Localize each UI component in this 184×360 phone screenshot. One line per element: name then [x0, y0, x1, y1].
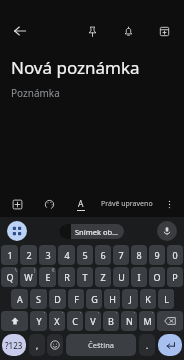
- staticText: E: [45, 271, 51, 283]
- button[interactable]: Z: [95, 267, 111, 287]
- staticText: 4: [64, 249, 70, 261]
- button[interactable]: M: [139, 311, 155, 331]
- button[interactable]: E: [39, 267, 56, 287]
- button[interactable]: Palette: [39, 194, 59, 214]
- staticText: H: [109, 293, 116, 305]
- button[interactable]: Shift: [1, 311, 28, 331]
- button[interactable]: ?123: [2, 334, 26, 356]
- staticText: S: [36, 293, 41, 305]
- button[interactable]: K: [140, 289, 156, 309]
- button[interactable]: Add: [7, 194, 27, 214]
- staticText: ': [152, 311, 154, 317]
- staticText: X: [54, 315, 60, 327]
- button[interactable]: W: [20, 267, 37, 287]
- staticText: L: [164, 293, 169, 305]
- button[interactable]: 1: [1, 245, 18, 265]
- button[interactable]: Emoji: [47, 334, 63, 356]
- button[interactable]: 8: [131, 245, 147, 265]
- staticText: B: [108, 315, 114, 327]
- button[interactable]: A: [11, 289, 28, 309]
- button[interactable]: Format text: [71, 194, 91, 214]
- button[interactable]: 5: [77, 245, 93, 265]
- button[interactable]: 0: [167, 245, 183, 265]
- button[interactable]: .: [139, 334, 155, 356]
- staticText: A: [17, 293, 23, 305]
- button[interactable]: More options: [159, 194, 179, 214]
- staticText: \: [15, 267, 17, 273]
- staticText: ˙: [136, 289, 137, 295]
- staticText: Z: [100, 271, 106, 283]
- staticText: 6: [100, 249, 106, 261]
- staticText: D: [54, 293, 61, 305]
- staticText: ': [98, 311, 100, 317]
- button[interactable]: G: [86, 289, 102, 309]
- button[interactable]: I: [131, 267, 147, 287]
- staticText: N: [126, 315, 133, 327]
- button[interactable]: F: [68, 289, 84, 309]
- button[interactable]: 7: [113, 245, 129, 265]
- staticText: O: [153, 271, 161, 283]
- button[interactable]: Keyboard menu: [7, 221, 27, 241]
- staticText: 0: [172, 249, 178, 261]
- staticText: ': [116, 311, 118, 317]
- button[interactable]: T: [77, 267, 93, 287]
- staticText: C: [72, 315, 78, 327]
- staticText: Poznámka: [11, 86, 60, 100]
- staticText: ?123: [5, 340, 23, 351]
- staticText: 8: [136, 249, 142, 261]
- button[interactable]: L: [158, 289, 174, 309]
- staticText: ˙: [154, 289, 155, 295]
- staticText: ˙: [64, 289, 65, 295]
- button[interactable]: ,: [29, 334, 45, 356]
- button[interactable]: Back: [6, 17, 34, 45]
- button[interactable]: 2: [20, 245, 37, 265]
- button[interactable]: R: [58, 267, 75, 287]
- button[interactable]: Reminder: [114, 17, 142, 45]
- button[interactable]: Voice input: [157, 221, 177, 241]
- staticText: ˙: [45, 289, 46, 295]
- staticText: ˙: [26, 289, 27, 295]
- staticText: Nová poznámka: [11, 56, 140, 79]
- button[interactable]: 6: [95, 245, 111, 265]
- button[interactable]: Q: [1, 267, 18, 287]
- staticText: ˙: [82, 289, 83, 295]
- button[interactable]: Archive: [150, 17, 178, 45]
- button[interactable]: D: [49, 289, 66, 309]
- button[interactable]: Enter: [158, 334, 182, 356]
- staticText: ': [134, 311, 136, 317]
- button[interactable]: Čeština: [66, 334, 136, 356]
- staticText: T: [82, 271, 88, 283]
- button[interactable]: S: [30, 289, 47, 309]
- button[interactable]: Snímek ob…: [59, 224, 124, 239]
- button[interactable]: U: [113, 267, 129, 287]
- button[interactable]: C: [67, 311, 83, 331]
- staticText: Snímek ob…: [75, 227, 118, 237]
- button[interactable]: N: [121, 311, 137, 331]
- button[interactable]: V: [85, 311, 101, 331]
- staticText: 5: [82, 249, 88, 261]
- staticText: V: [90, 315, 96, 327]
- staticText: A: [78, 198, 84, 210]
- button[interactable]: H: [104, 289, 120, 309]
- staticText: I: [137, 271, 141, 283]
- button[interactable]: Y: [30, 311, 47, 331]
- staticText: W: [24, 271, 33, 283]
- staticText: ,: [36, 340, 39, 351]
- button[interactable]: X: [49, 311, 65, 331]
- button[interactable]: P: [167, 267, 183, 287]
- button[interactable]: 9: [149, 245, 165, 265]
- staticText: ': [44, 311, 46, 317]
- staticText: U: [118, 271, 125, 283]
- staticText: G: [91, 293, 98, 305]
- staticText: €: [52, 267, 55, 273]
- button[interactable]: B: [103, 311, 119, 331]
- button[interactable]: 3: [39, 245, 56, 265]
- staticText: 2: [26, 249, 32, 261]
- button[interactable]: O: [149, 267, 165, 287]
- button[interactable]: 4: [58, 245, 75, 265]
- button[interactable]: Backspace: [157, 311, 183, 331]
- button[interactable]: J: [122, 289, 138, 309]
- staticText: ': [62, 311, 64, 317]
- staticText: R: [64, 271, 70, 283]
- button[interactable]: Pin: [78, 17, 106, 45]
